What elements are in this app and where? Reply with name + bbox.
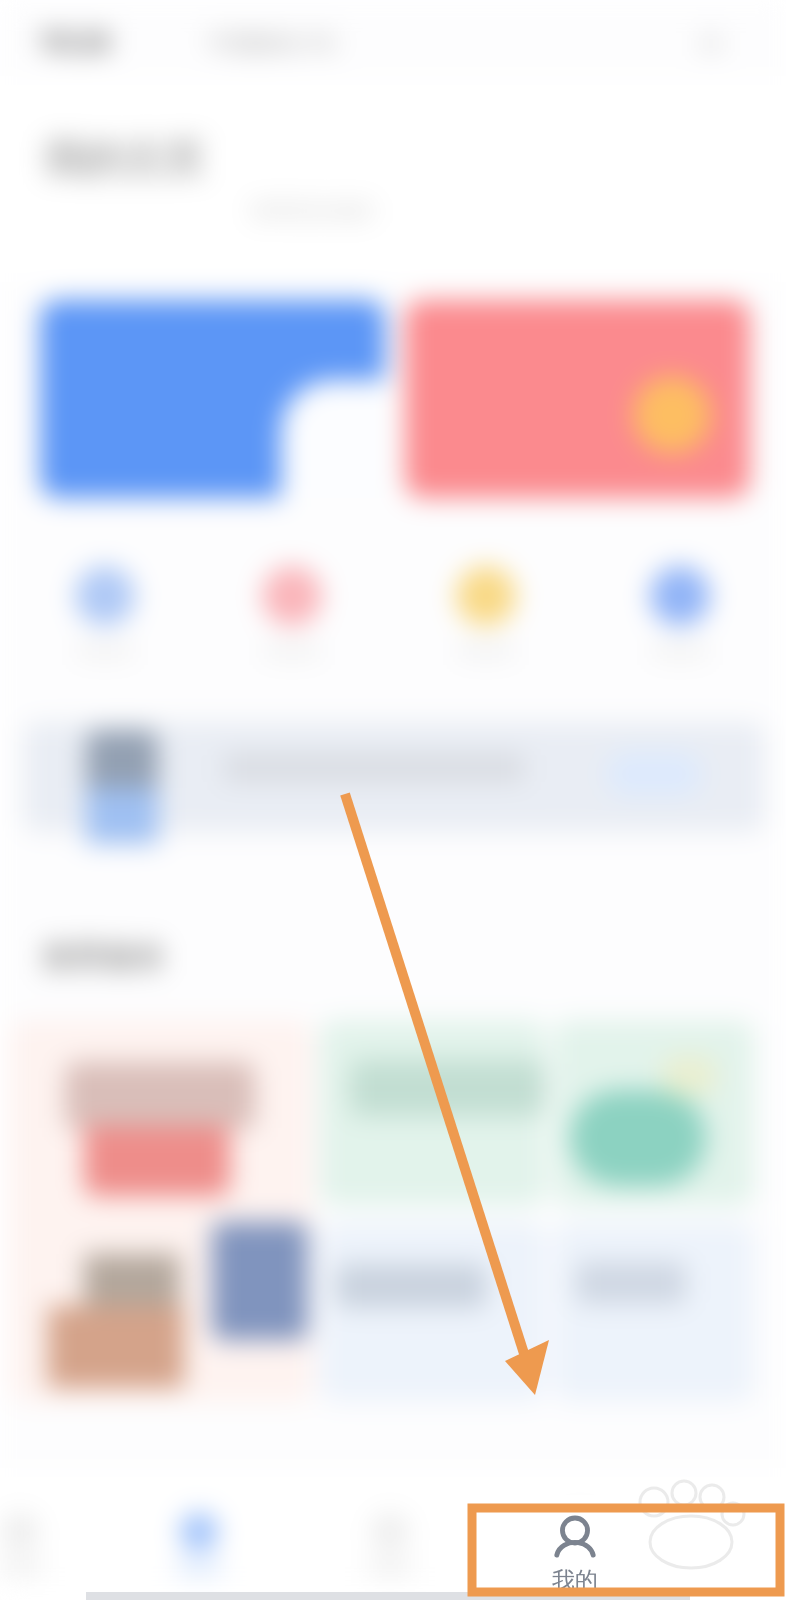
staticText: 推荐服务 bbox=[42, 938, 166, 977]
button[interactable]: Quick action bbox=[456, 566, 516, 626]
button[interactable]: Quick action bbox=[650, 566, 710, 626]
other: My profile bbox=[553, 1516, 597, 1560]
button[interactable] bbox=[40, 300, 385, 498]
button[interactable]: Quick action bbox=[75, 566, 135, 626]
button[interactable] bbox=[554, 1222, 754, 1402]
staticText: 中国移动 5G bbox=[208, 26, 336, 57]
staticText: 我的主页 bbox=[44, 134, 204, 184]
button[interactable] bbox=[320, 1020, 546, 1206]
button[interactable] bbox=[405, 300, 750, 498]
button[interactable] bbox=[320, 1222, 546, 1402]
button[interactable]: Navigation item bbox=[561, 1513, 599, 1551]
staticText: 10:24 bbox=[38, 22, 110, 60]
button[interactable] bbox=[10, 1020, 312, 1402]
staticText: 我的 bbox=[552, 1566, 598, 1595]
button[interactable]: My profile bbox=[552, 1516, 598, 1595]
button[interactable]: Quick action bbox=[262, 566, 322, 626]
button[interactable]: Navigation item bbox=[180, 1513, 218, 1551]
button[interactable] bbox=[554, 1020, 754, 1206]
button[interactable] bbox=[24, 722, 764, 832]
